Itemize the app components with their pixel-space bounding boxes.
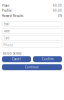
staticText: Name bbox=[3, 29, 10, 33]
staticText: Plans bbox=[2, 4, 9, 7]
staticText: Card bbox=[3, 36, 9, 40]
staticText: Profile bbox=[2, 9, 12, 12]
staticText: Email bbox=[3, 22, 9, 26]
staticText: Hosted Results bbox=[2, 14, 23, 18]
staticText: Continue bbox=[25, 65, 39, 69]
button[interactable]: Continue bbox=[2, 64, 62, 70]
button[interactable]: Cancel bbox=[2, 56, 31, 62]
staticText: Begin Service bbox=[3, 52, 22, 55]
staticText: $0.00 bbox=[53, 9, 62, 12]
staticText: Phone bbox=[3, 43, 13, 47]
staticText: Cancel bbox=[12, 57, 21, 61]
staticText: 0% bbox=[58, 14, 62, 18]
button[interactable]: Confirm bbox=[33, 56, 62, 62]
staticText: $0.00 bbox=[53, 4, 62, 7]
staticText: Confirm bbox=[42, 57, 53, 61]
